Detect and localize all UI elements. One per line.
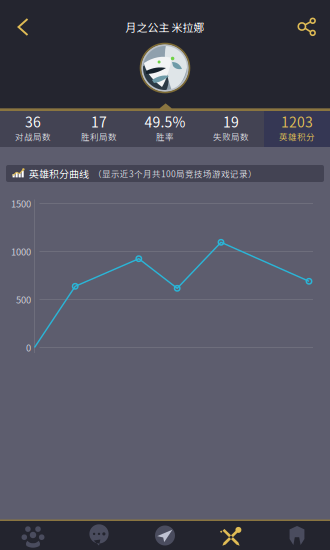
button[interactable]: Chat [66,521,132,550]
staticText: 1203 [281,111,313,132]
button[interactable]: Heroes [264,521,330,550]
staticText: （显示近3个月共100局竞技场游戏记录） [93,167,257,180]
staticText: 500 [16,293,31,306]
staticText: 49.5% [144,111,185,132]
staticText: 英雄积分 [279,130,315,143]
staticText: 1000 [11,245,31,258]
button[interactable]: Team [0,521,66,550]
staticText: 17 [91,111,107,132]
staticText: 19 [223,111,239,132]
button[interactable]: Arena [198,521,264,550]
button[interactable]: Discover [132,521,198,550]
staticText: 胜利局数 [81,130,117,143]
staticText: 英雄积分曲线 [29,166,89,181]
button[interactable]: Share [284,6,330,48]
staticText: 1500 [11,197,31,210]
staticText: 36 [25,111,41,132]
staticText: 失败局数 [213,130,249,143]
button[interactable]: Back [0,6,46,48]
staticText: 月之公主 米拉娜 [125,19,204,35]
staticText: 对战局数 [15,130,51,143]
staticText: 0 [26,341,31,354]
staticText: 胜率 [156,130,174,143]
